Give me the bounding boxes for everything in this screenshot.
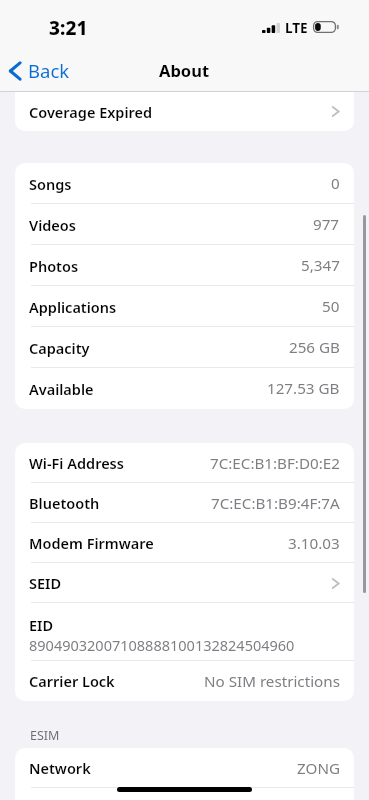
staticText: 0 (331, 173, 340, 194)
staticText: Back (28, 58, 70, 83)
staticText: LTE (285, 19, 308, 37)
staticText: 3:21 (49, 15, 88, 41)
staticText: 50 (322, 296, 340, 317)
button[interactable]: EID (15, 603, 354, 661)
staticText: Videos (29, 215, 76, 235)
button[interactable]: Videos (15, 204, 354, 245)
staticText: ESIM (30, 727, 60, 744)
button[interactable]: Photos (15, 245, 354, 286)
staticText: Available (29, 379, 94, 399)
staticText: 977 (313, 214, 340, 235)
staticText: EID (29, 615, 54, 635)
button[interactable]: Bluetooth (15, 483, 354, 523)
staticText: ZONG (297, 758, 340, 779)
staticText: Modem Firmware (29, 533, 154, 553)
staticText: Wi-Fi Address (29, 453, 124, 473)
staticText: Songs (29, 174, 72, 194)
button[interactable]: Modem Firmware (15, 523, 354, 563)
button[interactable]: Back (8, 58, 70, 83)
button[interactable]: Capacity (15, 327, 354, 368)
staticText: Coverage Expired (29, 102, 153, 122)
staticText: Applications (29, 297, 117, 317)
button[interactable]: Carrier Lock (15, 661, 354, 701)
staticText: Carrier Lock (29, 671, 115, 691)
button[interactable]: Coverage Expired (15, 92, 354, 131)
staticText: Capacity (29, 338, 90, 358)
staticText: Network (29, 758, 91, 778)
staticText: No SIM restrictions (204, 671, 340, 692)
staticText: Photos (29, 256, 79, 276)
staticText: 5,347 (301, 255, 340, 276)
button[interactable]: Wi-Fi Address (15, 443, 354, 483)
button[interactable]: Available (15, 368, 354, 409)
staticText: SEID (29, 573, 62, 593)
button[interactable]: Songs (15, 163, 354, 204)
staticText: 89049032007108888100132824504960 (29, 635, 295, 655)
staticText: 127.53 GB (267, 378, 340, 399)
staticText: 7C:EC:B1:B9:4F:7A (211, 493, 340, 514)
staticText: 7C:EC:B1:BF:D0:E2 (210, 453, 340, 474)
staticText: 3.10.03 (288, 533, 340, 554)
button[interactable]: Network (15, 748, 354, 788)
staticText: 256 GB (289, 337, 340, 358)
staticText: Bluetooth (29, 493, 100, 513)
button[interactable]: SEID (15, 563, 354, 603)
button[interactable]: Applications (15, 286, 354, 327)
staticText: About (159, 59, 210, 81)
